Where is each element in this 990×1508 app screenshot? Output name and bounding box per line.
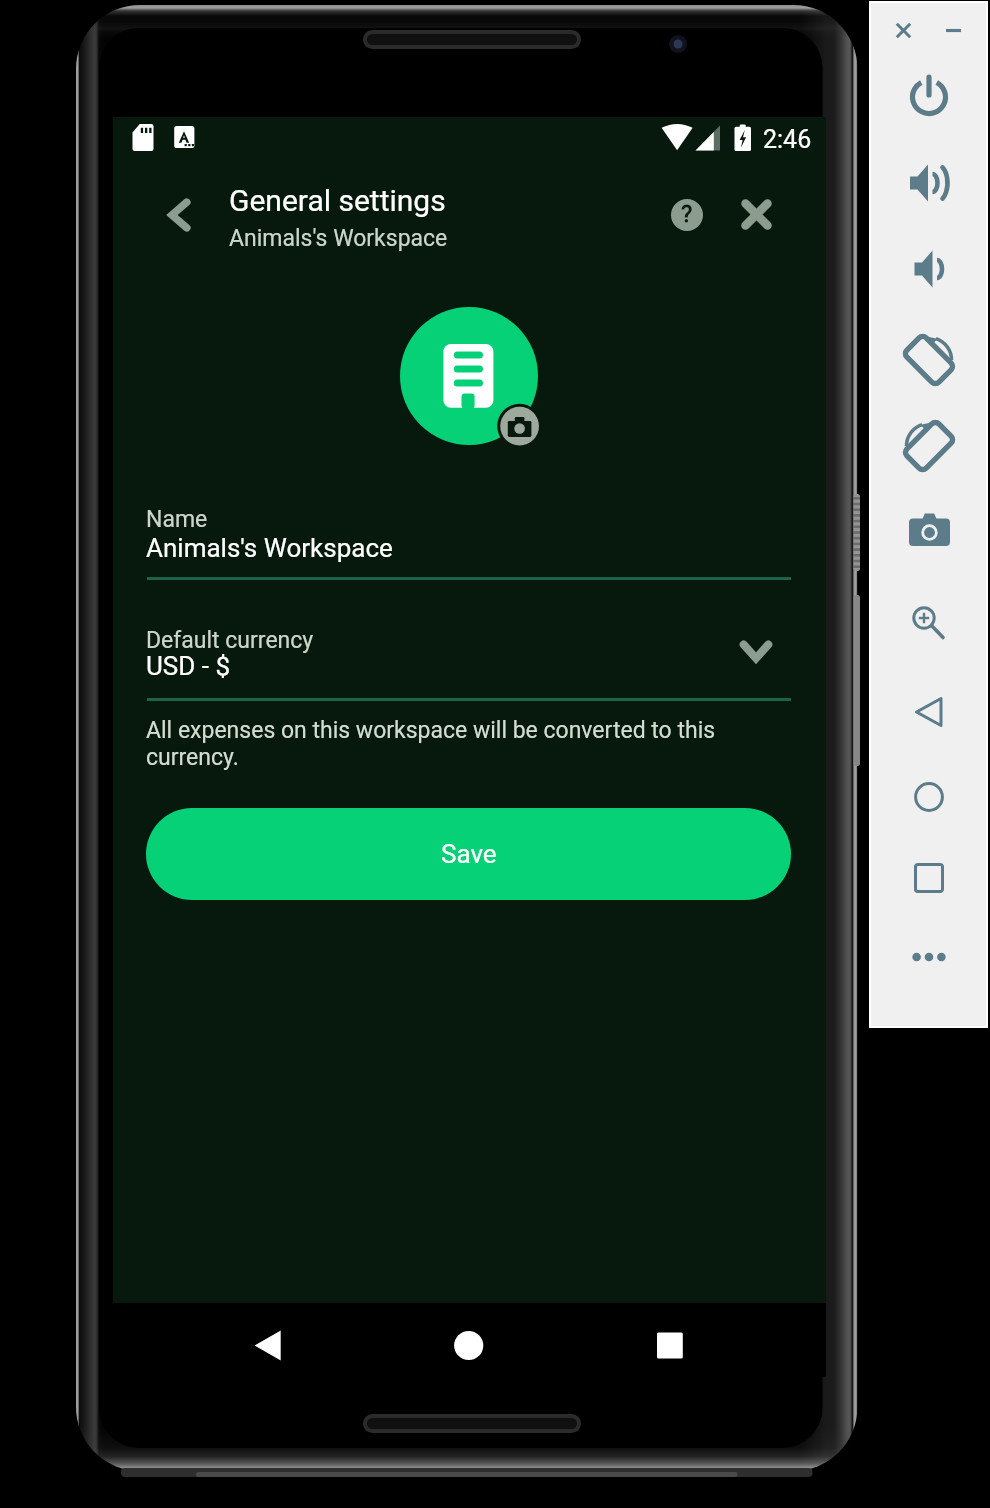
- button[interactable]: Power: [885, 61, 973, 133]
- staticText: Animals's Workspace: [229, 225, 448, 252]
- button[interactable]: Close emulator window: [879, 6, 927, 54]
- button[interactable]: Workspace logo: [400, 307, 538, 445]
- button[interactable]: Back: [155, 191, 203, 239]
- staticText: ?: [681, 200, 693, 228]
- button[interactable]: Save: [146, 808, 791, 900]
- button[interactable]: Home: [885, 761, 973, 833]
- button[interactable]: Select default currency: [732, 628, 780, 676]
- staticText: Name: [146, 506, 208, 533]
- staticText: USD - $: [146, 651, 231, 681]
- button[interactable]: Rotate left: [885, 324, 973, 396]
- button[interactable]: Change logo: [497, 404, 542, 449]
- button[interactable]: Close: [732, 190, 781, 239]
- button[interactable]: Help: [662, 190, 711, 239]
- staticText: Animals's Workspace: [146, 533, 393, 563]
- staticText: Save: [441, 839, 497, 869]
- staticText: All expenses on this workspace will be c…: [146, 717, 746, 771]
- staticText: Default currency: [146, 627, 314, 654]
- button[interactable]: Zoom in: [885, 587, 973, 659]
- button[interactable]: Back: [885, 676, 973, 748]
- button[interactable]: Volume down: [885, 233, 973, 305]
- button[interactable]: Volume up: [885, 147, 973, 219]
- button[interactable]: Overview: [885, 842, 973, 914]
- button[interactable]: Rotate right: [885, 410, 973, 482]
- button[interactable]: More options: [885, 921, 973, 993]
- staticText: 2:46: [763, 125, 812, 154]
- button[interactable]: Take screenshot: [885, 493, 973, 565]
- staticText: General settings: [229, 183, 446, 218]
- button[interactable]: Minimize emulator window: [929, 6, 977, 54]
